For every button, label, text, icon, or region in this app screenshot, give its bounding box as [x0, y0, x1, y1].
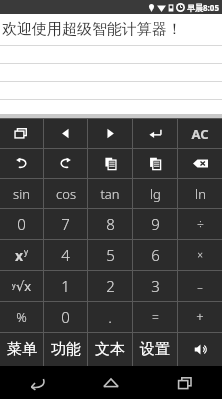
button[interactable]: 设置: [133, 333, 177, 366]
button[interactable]: lg: [133, 179, 177, 208]
button[interactable]: 4: [44, 240, 87, 270]
button[interactable]: –: [178, 271, 222, 301]
staticText: 3: [151, 276, 160, 296]
staticText: x: [15, 246, 24, 265]
button[interactable]: 7: [44, 209, 87, 239]
button[interactable]: 3: [133, 271, 177, 301]
button[interactable]: Back: [0, 366, 74, 399]
button[interactable]: %: [0, 302, 43, 332]
button[interactable]: x: [0, 240, 43, 270]
button[interactable]: sin: [0, 179, 43, 208]
button[interactable]: 9: [133, 209, 177, 239]
button[interactable]: cos: [44, 179, 87, 208]
staticText: y: [12, 281, 16, 291]
button[interactable]: .: [88, 302, 132, 332]
staticText: tan: [100, 185, 120, 203]
staticText: 1: [61, 276, 70, 296]
button[interactable]: 5: [88, 240, 132, 270]
staticText: y: [24, 246, 29, 257]
button[interactable]: ln: [178, 179, 222, 208]
staticText: 5: [106, 245, 115, 265]
staticText: 设置: [140, 340, 170, 359]
staticText: 欢迎使用超级智能计算器！: [2, 20, 182, 39]
staticText: 文本: [95, 340, 125, 359]
button[interactable]: Key: [133, 149, 177, 178]
staticText: 0: [61, 307, 70, 327]
button[interactable]: y: [0, 271, 43, 301]
button[interactable]: Key: [178, 333, 222, 366]
staticText: √x: [16, 277, 32, 295]
staticText: 菜单: [7, 340, 37, 359]
button[interactable]: ÷: [178, 209, 222, 239]
button[interactable]: 文本: [88, 333, 132, 366]
staticText: cos: [56, 185, 76, 203]
button[interactable]: Key: [88, 119, 132, 148]
button[interactable]: Key: [44, 119, 87, 148]
button[interactable]: =: [133, 302, 177, 332]
button[interactable]: 菜单: [0, 333, 43, 366]
button[interactable]: Key: [88, 149, 132, 178]
staticText: 7: [61, 214, 70, 234]
staticText: ×: [197, 248, 203, 262]
staticText: %: [16, 308, 27, 326]
staticText: =: [152, 309, 159, 325]
staticText: AC: [191, 125, 209, 143]
staticText: lg: [150, 185, 161, 203]
button[interactable]: Recents: [148, 366, 222, 399]
staticText: 6: [151, 245, 160, 265]
staticText: +: [196, 308, 204, 326]
staticText: 4: [61, 245, 70, 265]
staticText: sin: [13, 185, 30, 203]
button[interactable]: 1: [44, 271, 87, 301]
staticText: ÷: [197, 216, 204, 232]
staticText: .: [108, 307, 112, 327]
staticText: 9: [151, 214, 160, 234]
staticText: 8: [106, 214, 115, 234]
button[interactable]: Key: [133, 119, 177, 148]
button[interactable]: 功能: [44, 333, 87, 366]
button[interactable]: 0: [44, 302, 87, 332]
button[interactable]: Key: [44, 149, 87, 178]
button[interactable]: Key: [178, 149, 222, 178]
button[interactable]: 0: [0, 209, 43, 239]
button[interactable]: Key: [0, 119, 43, 148]
button[interactable]: Key: [0, 149, 43, 178]
button[interactable]: +: [178, 302, 222, 332]
staticText: 功能: [51, 340, 81, 359]
staticText: ln: [195, 185, 206, 203]
button[interactable]: AC: [178, 119, 222, 148]
staticText: 2: [106, 276, 115, 296]
staticText: –: [197, 279, 203, 294]
button[interactable]: Home: [74, 366, 148, 399]
button[interactable]: 6: [133, 240, 177, 270]
staticText: 0: [17, 214, 26, 234]
button[interactable]: ×: [178, 240, 222, 270]
button[interactable]: tan: [88, 179, 132, 208]
button[interactable]: 2: [88, 271, 132, 301]
button[interactable]: 8: [88, 209, 132, 239]
staticText: 早晨8:05: [187, 2, 219, 13]
